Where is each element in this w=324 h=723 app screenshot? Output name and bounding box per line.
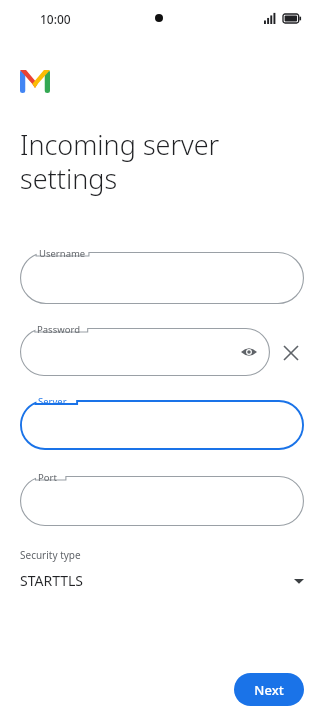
button[interactable]: Port (20, 476, 304, 526)
button[interactable]: Server (20, 400, 304, 450)
button[interactable]: Show password (236, 339, 262, 365)
button[interactable]: Username (20, 252, 304, 304)
staticText: Username (39, 247, 86, 260)
button[interactable]: Password (20, 328, 270, 376)
staticText: Next (254, 681, 284, 699)
staticText: 10:00 (40, 11, 71, 27)
staticText: Password (37, 323, 80, 336)
staticText: Port (38, 471, 57, 484)
staticText: Security type (20, 548, 81, 562)
staticText: STARTTLS (20, 571, 294, 590)
button[interactable]: Security type (20, 548, 304, 590)
staticText: Incoming server settings (20, 126, 220, 197)
staticText: Server (38, 395, 67, 408)
button[interactable]: Next (234, 673, 304, 706)
button[interactable]: Clear password (278, 340, 304, 366)
